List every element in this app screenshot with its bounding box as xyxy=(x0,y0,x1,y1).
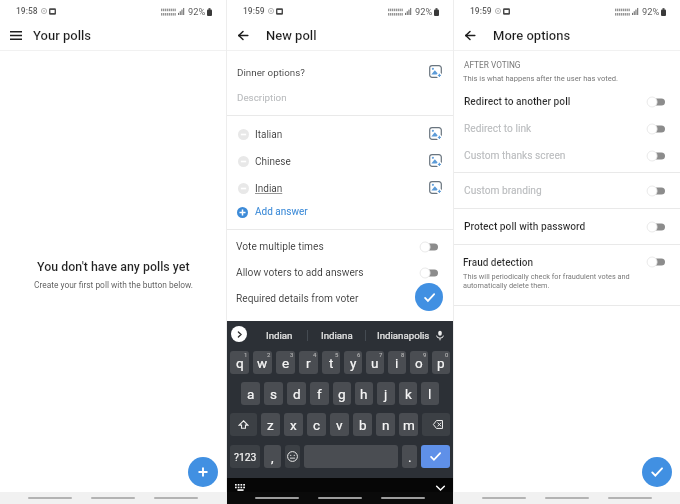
button[interactable]: n xyxy=(376,413,395,436)
staticText: . xyxy=(408,449,412,465)
staticText: You don't have any polls yet xyxy=(37,259,190,274)
staticText: Indiana xyxy=(321,330,353,341)
button[interactable]: p xyxy=(432,351,450,374)
staticText: n xyxy=(382,417,390,433)
staticText: Create your first poll with the button b… xyxy=(34,280,193,290)
staticText: 6 xyxy=(357,351,361,358)
button[interactable]: Indian xyxy=(238,182,445,195)
button[interactable]: Allow voters to add answers xyxy=(236,266,438,280)
button[interactable]: q xyxy=(230,351,249,374)
staticText: q xyxy=(236,355,244,371)
staticText: This is what happens after the user has … xyxy=(463,74,619,83)
staticText: 92% xyxy=(188,6,206,17)
staticText: j xyxy=(384,386,388,402)
staticText: 5 xyxy=(335,351,339,358)
button[interactable]: a xyxy=(241,382,260,405)
staticText: 9 xyxy=(423,351,427,358)
staticText: Indianapolis xyxy=(377,330,430,341)
staticText: 92% xyxy=(415,6,433,17)
staticText: More options xyxy=(493,28,571,43)
button[interactable]: k xyxy=(399,382,417,405)
staticText: 1 xyxy=(244,351,248,358)
button[interactable]: f xyxy=(310,382,329,405)
button[interactable]: Add image to question xyxy=(425,61,446,82)
staticText: ?123 xyxy=(234,451,257,463)
button[interactable]: Vote multiple times xyxy=(236,240,438,254)
button[interactable]: Chinese xyxy=(238,155,445,168)
button[interactable]: Shift xyxy=(230,413,257,436)
button[interactable]: Add image to answer xyxy=(425,150,446,171)
staticText: Redirect to link xyxy=(464,123,532,135)
staticText: h xyxy=(360,386,368,402)
staticText: w xyxy=(257,355,268,371)
staticText: 2 xyxy=(267,351,271,358)
button[interactable]: i xyxy=(388,351,406,374)
button[interactable]: w xyxy=(253,351,272,374)
button[interactable]: b xyxy=(353,413,372,436)
button[interactable]: s xyxy=(264,382,283,405)
staticText: This will periodically check for fraudul… xyxy=(463,272,630,290)
staticText: Indian xyxy=(266,330,293,341)
button[interactable]: r xyxy=(299,351,318,374)
button[interactable]: Change keyboard xyxy=(235,484,246,492)
button[interactable]: , xyxy=(264,445,281,468)
button[interactable]: Navigate back xyxy=(233,25,253,45)
button[interactable]: Redirect to link xyxy=(464,122,665,136)
button[interactable]: x xyxy=(284,413,303,436)
button[interactable]: Backspace xyxy=(422,413,450,436)
button[interactable]: v xyxy=(330,413,349,436)
button[interactable]: Add image to answer xyxy=(425,123,446,144)
staticText: b xyxy=(359,417,367,433)
staticText: r xyxy=(306,355,311,371)
button[interactable]: Save options xyxy=(642,457,672,487)
button[interactable]: o xyxy=(410,351,428,374)
staticText: i xyxy=(395,355,399,371)
button[interactable]: Symbols xyxy=(230,445,260,468)
button[interactable]: . xyxy=(402,445,417,468)
button[interactable]: Add image to answer xyxy=(425,177,446,198)
button[interactable]: t xyxy=(322,351,340,374)
button[interactable]: g xyxy=(333,382,351,405)
button[interactable]: Redirect to another poll xyxy=(464,95,665,109)
button[interactable]: c xyxy=(307,413,326,436)
button[interactable]: Protect poll with password xyxy=(464,220,665,234)
button[interactable]: j xyxy=(377,382,395,405)
button[interactable]: l xyxy=(421,382,439,405)
button[interactable]: Custom thanks screen xyxy=(464,149,665,163)
staticText: u xyxy=(371,355,379,371)
staticText: 92% xyxy=(642,6,660,17)
button[interactable]: u xyxy=(366,351,384,374)
staticText: New poll xyxy=(266,28,317,43)
button[interactable]: e xyxy=(276,351,295,374)
staticText: Dinner options? xyxy=(237,67,305,78)
staticText: Fraud detection xyxy=(463,257,533,269)
button[interactable]: Add answer xyxy=(237,203,308,221)
button[interactable]: y xyxy=(344,351,362,374)
button[interactable]: Voice input xyxy=(432,325,448,345)
button[interactable]: Open navigation menu xyxy=(6,25,26,45)
button[interactable]: z xyxy=(261,413,280,436)
button[interactable]: d xyxy=(287,382,306,405)
button[interactable]: Required details from voter xyxy=(236,292,438,306)
staticText: d xyxy=(293,386,301,402)
button[interactable]: Italian xyxy=(238,128,445,141)
button[interactable]: More suggestions xyxy=(231,326,247,342)
staticText: k xyxy=(405,386,412,402)
button[interactable]: Emoji xyxy=(285,445,300,468)
button[interactable]: Save poll xyxy=(415,283,443,311)
button[interactable]: Custom branding xyxy=(464,184,665,198)
button[interactable]: Fraud detection xyxy=(454,248,680,298)
button[interactable]: Navigate back xyxy=(460,25,480,45)
staticText: m xyxy=(403,417,415,433)
button[interactable]: Enter xyxy=(421,445,450,468)
staticText: 7 xyxy=(379,351,383,358)
button[interactable]: Create poll xyxy=(188,457,218,487)
staticText: Custom branding xyxy=(464,185,542,197)
staticText: Required details from voter xyxy=(236,293,359,305)
staticText: o xyxy=(415,355,423,371)
button[interactable]: h xyxy=(355,382,373,405)
button[interactable]: Hide keyboard xyxy=(435,482,446,493)
staticText: Description xyxy=(237,92,287,103)
button[interactable]: m xyxy=(399,413,418,436)
